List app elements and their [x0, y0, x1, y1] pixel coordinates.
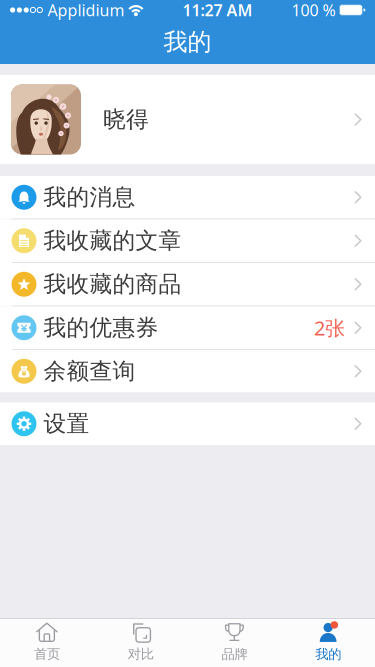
staticText: 我的优惠券 — [43, 314, 158, 342]
button[interactable]: 对比 — [94, 619, 188, 667]
staticText: 2张 — [314, 314, 345, 341]
staticText: 我的 — [163, 27, 211, 57]
staticText: 我收藏的文章 — [43, 227, 181, 255]
button[interactable]: 首页 — [0, 619, 94, 667]
staticText: 余额查询 — [43, 357, 135, 385]
button[interactable]: 晓得 — [0, 75, 375, 164]
staticText: 100 % — [291, 0, 335, 21]
staticText: 对比 — [128, 646, 154, 662]
staticText: 晓得 — [103, 106, 149, 133]
button[interactable]: 我的优惠券 — [0, 306, 375, 349]
staticText: 我的 — [315, 646, 341, 662]
staticText: 我的消息 — [43, 183, 135, 211]
button[interactable]: 我收藏的文章 — [0, 219, 375, 262]
staticText: 首页 — [34, 646, 60, 662]
staticText: 品牌 — [221, 646, 247, 662]
button[interactable]: 我的 — [281, 619, 375, 667]
staticText: 11:27 AM — [182, 0, 252, 21]
staticText: 我收藏的商品 — [43, 270, 181, 298]
button[interactable]: 我收藏的商品 — [0, 263, 375, 305]
button[interactable]: 余额查询 — [0, 350, 375, 392]
staticText: Applidium — [47, 0, 124, 21]
staticText: 设置 — [43, 410, 89, 438]
button[interactable]: 我的消息 — [0, 176, 375, 218]
button[interactable]: 品牌 — [187, 619, 281, 667]
button[interactable]: 设置 — [0, 402, 375, 445]
